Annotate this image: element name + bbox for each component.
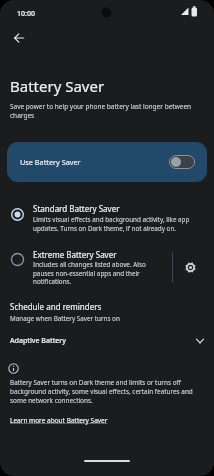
button[interactable]: Learn more about Battery Saver (10, 416, 108, 425)
staticText: Limits visual effects and background act… (33, 215, 190, 232)
staticText: Save power to help your phone battery la… (10, 102, 192, 120)
button[interactable] (6, 26, 32, 50)
button[interactable]: Use Battery Saver (7, 142, 207, 182)
staticText: Manage when Battery Saver turns on (10, 314, 120, 323)
staticText: Battery Saver turns on Dark theme and li… (10, 378, 193, 405)
button[interactable]: Extreme Battery Saver (0, 242, 170, 290)
staticText: Extreme Battery Saver (33, 249, 117, 260)
button[interactable] (179, 256, 201, 278)
staticText: Standard Battery Saver (33, 203, 120, 214)
staticText: Battery Saver (10, 76, 105, 96)
button[interactable]: Adaptive Battery (0, 332, 214, 351)
staticText: Schedule and reminders (10, 301, 102, 312)
staticText: 10:00 (17, 9, 35, 19)
staticText: Includes all changes listed above. Also … (33, 260, 146, 285)
button[interactable]: Standard Battery Saver (0, 196, 214, 240)
staticText: Use Battery Saver (20, 157, 81, 167)
staticText: Adaptive Battery (10, 336, 66, 346)
